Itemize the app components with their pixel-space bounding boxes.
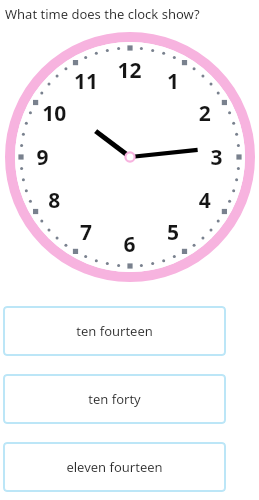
staticText: eleven fourteen bbox=[66, 458, 163, 476]
staticText: ten fourteen bbox=[76, 322, 153, 340]
staticText: ten forty bbox=[88, 390, 141, 408]
staticText: What time does the clock show? bbox=[5, 5, 256, 23]
button[interactable]: eleven fourteen bbox=[3, 442, 226, 492]
button[interactable]: ten fourteen bbox=[3, 306, 226, 356]
button[interactable]: ten forty bbox=[3, 374, 226, 424]
